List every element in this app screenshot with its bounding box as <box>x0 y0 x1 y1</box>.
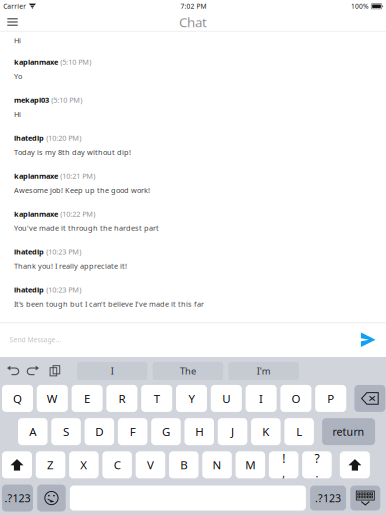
button[interactable]: Q <box>2 385 33 412</box>
staticText: ? <box>314 450 319 466</box>
staticText: I'm <box>257 365 271 377</box>
staticText: kaplanmaxe <box>14 209 58 219</box>
staticText: (10:20 PM) <box>46 133 81 143</box>
button[interactable]: Paste <box>49 365 60 377</box>
staticText: kaplanmaxe <box>14 171 58 181</box>
staticText: Hi <box>14 109 21 119</box>
button[interactable]: K <box>251 418 281 445</box>
button[interactable]: Y <box>176 385 207 412</box>
button[interactable]: Z <box>36 451 65 478</box>
staticText: (5:10 PM) <box>51 95 82 105</box>
button[interactable]: D <box>85 418 114 445</box>
staticText: L <box>296 424 302 439</box>
button[interactable]: Redo <box>27 364 40 377</box>
staticText: Thank you! I really appreciate it! <box>14 261 127 271</box>
staticText: (10:22 PM) <box>60 209 95 219</box>
staticText: T <box>154 391 160 406</box>
staticText: A <box>29 424 36 439</box>
button[interactable]: I <box>77 362 147 380</box>
staticText: P <box>327 391 334 406</box>
staticText: Hi <box>14 35 21 45</box>
button[interactable]: Menu <box>0 11 25 33</box>
button[interactable]: .?123 <box>2 484 33 511</box>
staticText: .?123 <box>315 491 341 505</box>
staticText: E <box>84 391 90 406</box>
button[interactable]: X <box>69 451 99 478</box>
staticText: (5:10 PM) <box>60 57 91 67</box>
staticText: I <box>111 365 114 377</box>
staticText: J <box>231 424 234 439</box>
staticText: ihatedip <box>14 133 44 143</box>
staticText: Chat <box>179 13 207 31</box>
button[interactable]: H <box>184 418 214 445</box>
button[interactable]: Undo <box>6 364 19 377</box>
button[interactable]: R <box>106 385 137 412</box>
button[interactable]: The <box>153 362 223 380</box>
staticText: Carrier <box>3 2 26 11</box>
staticText: N <box>213 457 222 473</box>
button[interactable]: U <box>211 385 242 412</box>
staticText: W <box>47 391 58 406</box>
button[interactable]: J <box>218 418 247 445</box>
button[interactable]: Shift <box>2 451 32 478</box>
staticText: F <box>130 424 136 439</box>
staticText: , <box>282 466 285 480</box>
button[interactable]: L <box>284 418 314 445</box>
button[interactable]: I'm <box>228 362 299 380</box>
staticText: I <box>259 391 263 406</box>
button[interactable]: G <box>151 418 181 445</box>
button[interactable]: Hide Keyboard <box>350 485 380 510</box>
button[interactable]: S <box>51 418 81 445</box>
button[interactable]: Delete <box>354 385 385 412</box>
button[interactable]: ! <box>269 451 298 478</box>
staticText: Y <box>188 391 194 406</box>
staticText: Send Message... <box>9 335 61 344</box>
button[interactable]: A <box>18 418 47 445</box>
button[interactable]: V <box>136 451 165 478</box>
staticText: ihatedip <box>14 247 44 257</box>
staticText: 7:02 PM <box>180 2 206 11</box>
staticText: (10:23 PM) <box>46 285 81 295</box>
staticText: B <box>180 457 187 473</box>
staticText: ihatedip <box>14 285 44 295</box>
staticText: O <box>291 391 300 406</box>
staticText: H <box>195 424 203 439</box>
staticText: mekapl03 <box>14 95 49 105</box>
staticText: 100% <box>351 2 369 11</box>
staticText: return <box>333 425 365 439</box>
button[interactable]: N <box>202 451 232 478</box>
button[interactable]: Return <box>322 418 375 445</box>
staticText: The <box>180 365 196 377</box>
staticText: K <box>262 424 269 439</box>
staticText: It's been tough but I can't believe I've… <box>14 299 204 309</box>
staticText: G <box>162 424 170 439</box>
button[interactable]: E <box>72 385 103 412</box>
button[interactable]: W <box>37 385 68 412</box>
button[interactable]: F <box>118 418 147 445</box>
staticText: ! <box>282 450 285 466</box>
staticText: S <box>63 424 69 439</box>
button[interactable]: M <box>236 451 265 478</box>
staticText: Yo <box>14 71 22 81</box>
staticText: . <box>315 466 318 480</box>
button[interactable]: P <box>315 385 346 412</box>
staticText: C <box>114 457 121 473</box>
staticText: D <box>95 424 103 439</box>
staticText: Q <box>13 391 22 406</box>
button[interactable]: Send <box>354 327 382 353</box>
staticText: Today is my 8th day without dip! <box>14 147 131 157</box>
button[interactable]: .?123 <box>310 485 346 510</box>
button[interactable]: Emoji <box>37 484 66 511</box>
staticText: (10:21 PM) <box>60 171 95 181</box>
button[interactable]: I <box>246 385 277 412</box>
staticText: U <box>222 391 230 406</box>
button[interactable]: C <box>102 451 132 478</box>
staticText: .?123 <box>4 491 30 505</box>
button[interactable]: O <box>280 385 311 412</box>
button[interactable]: T <box>141 385 172 412</box>
button[interactable]: B <box>169 451 198 478</box>
button[interactable]: ? <box>302 451 332 478</box>
staticText: X <box>80 457 87 473</box>
button[interactable]: Shift <box>340 451 370 478</box>
